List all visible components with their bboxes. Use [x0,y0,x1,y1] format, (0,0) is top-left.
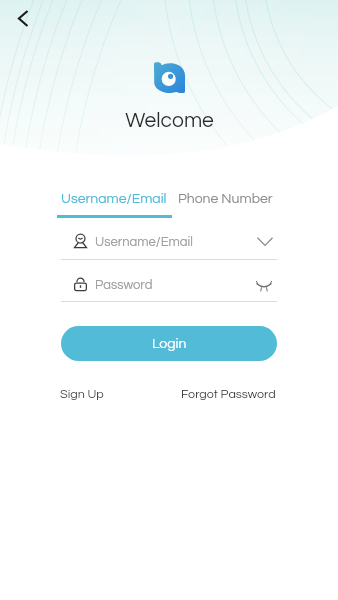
staticText: Welcome [125,110,214,132]
staticText: Phone Number [178,192,273,206]
staticText: Username/Email [95,235,193,248]
button[interactable]: Phone Number [174,189,277,209]
button[interactable]: Login [61,326,277,361]
staticText: Sign Up [60,388,104,401]
button[interactable]: Forgot Password [181,388,276,401]
button[interactable]: Username/Email [57,189,171,209]
staticText: Username/Email [61,192,167,206]
staticText: Forgot Password [181,388,276,401]
button[interactable]: Back [6,2,38,34]
button[interactable]: Username/Email [0,226,338,256]
staticText: Login [152,337,187,351]
staticText: Password [95,278,153,291]
button[interactable]: Password [0,270,338,299]
button[interactable]: Sign Up [60,388,104,401]
button[interactable]: Show password [255,276,273,294]
